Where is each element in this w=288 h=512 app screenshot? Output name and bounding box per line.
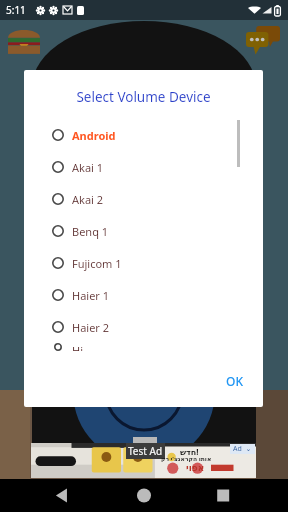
staticText: אפוי — [186, 463, 205, 473]
staticText: OK — [226, 373, 243, 389]
button[interactable]: Akai 2 — [24, 183, 263, 215]
staticText: Benq 1 — [72, 224, 109, 239]
staticText: Haier 1 — [72, 288, 110, 303]
button[interactable]: Haier 2 — [24, 311, 263, 343]
staticText: חדש! — [180, 446, 199, 457]
staticText: 5:11 — [6, 3, 26, 17]
button[interactable]: Benq 1 — [24, 215, 263, 247]
staticText: Akai 2 — [72, 192, 104, 207]
button[interactable]: Hi — [24, 343, 263, 351]
staticText: Test Ad — [128, 444, 163, 458]
other: Chat — [246, 26, 280, 56]
staticText: Akai 1 — [72, 160, 104, 175]
button[interactable]: Android — [24, 119, 263, 151]
staticText: Fujicom 1 — [72, 256, 122, 271]
staticText: Hi — [72, 343, 83, 351]
staticText: Haier 2 — [72, 320, 110, 335]
staticText: Ad ⌄ — [233, 444, 252, 454]
button[interactable]: Test Ad — [31, 443, 256, 478]
staticText: Select Volume Device — [24, 88, 263, 106]
button[interactable]: Fujicom 1 — [24, 247, 263, 279]
button[interactable]: Akai 1 — [24, 151, 263, 183]
button[interactable]: Ad ⌄ — [233, 444, 252, 454]
staticText: אותו הקראנצ'י רק — [161, 455, 212, 463]
staticText: Android — [72, 128, 116, 143]
button[interactable]: Haier 1 — [24, 279, 263, 311]
button[interactable]: OK — [214, 365, 255, 397]
